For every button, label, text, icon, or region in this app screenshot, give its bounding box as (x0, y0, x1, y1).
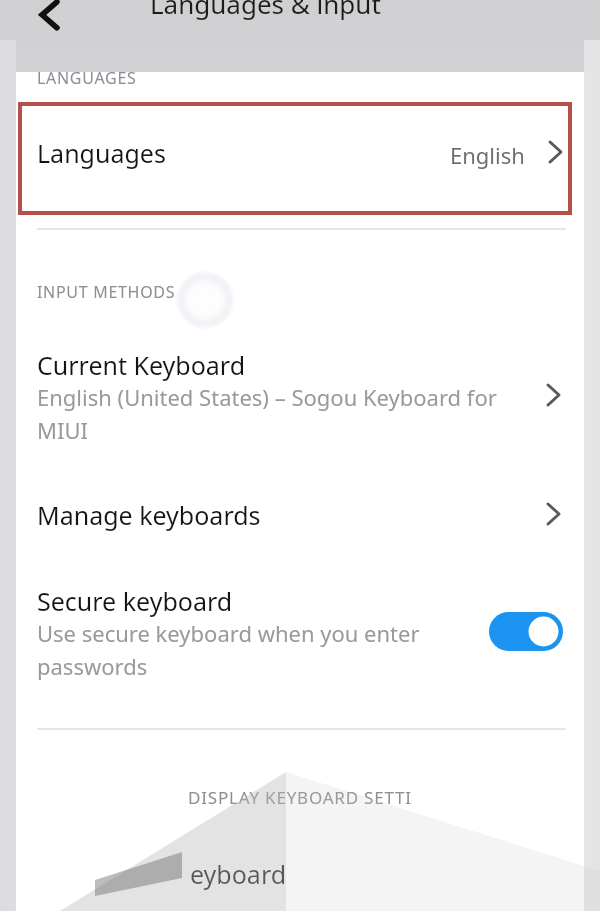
button[interactable]: Secure keyboard (0, 578, 600, 688)
staticText: Manage keyboards (37, 498, 261, 532)
button[interactable]: Languages (20, 104, 570, 213)
staticText: English (United States) – Sogou Keyboard… (37, 382, 527, 445)
staticText: Current Keyboard (37, 348, 246, 382)
button[interactable]: Back (26, 0, 70, 28)
staticText: INPUT METHODS (37, 281, 176, 303)
staticText: DISPLAY KEYBOARD SETTI (0, 786, 600, 820)
staticText: Use secure keyboard when you enter passw… (37, 618, 457, 681)
staticText: Languages (37, 136, 166, 170)
staticText: English (450, 140, 525, 170)
button[interactable]: Secure keyboard toggle (489, 612, 563, 651)
staticText: LANGUAGES (37, 67, 137, 89)
staticText: Secure keyboard (37, 584, 233, 618)
staticText: Languages & input (150, 0, 381, 21)
staticText: eyboard (190, 857, 287, 891)
button[interactable]: Manage keyboards (0, 483, 600, 545)
button[interactable]: Current Keyboard (0, 340, 600, 450)
